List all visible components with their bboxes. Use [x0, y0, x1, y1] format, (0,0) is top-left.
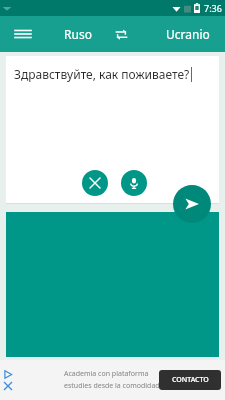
staticText: estudies desde la comodidad: [64, 381, 160, 391]
staticText: CONTACTO: [172, 375, 209, 385]
button[interactable]: Ruso: [50, 19, 105, 49]
button[interactable]: CONTACTO: [159, 370, 221, 390]
staticText: Academia con plataforma: [64, 369, 149, 379]
staticText: Ruso: [64, 26, 92, 42]
button[interactable]: Voice input: [121, 170, 147, 196]
button[interactable]: Clear text: [82, 170, 108, 196]
button[interactable]: Menu: [8, 19, 38, 49]
button[interactable]: Send: [173, 185, 211, 223]
staticText: Здравствуйте, как поживаете?: [14, 66, 190, 82]
button[interactable]: Ucranio: [157, 19, 219, 49]
staticText: 7:36: [204, 2, 222, 14]
staticText: Ucranio: [166, 26, 210, 42]
button[interactable]: Swap languages: [108, 21, 134, 47]
button[interactable]: Здравствуйте, как поживаете?: [6, 56, 219, 204]
